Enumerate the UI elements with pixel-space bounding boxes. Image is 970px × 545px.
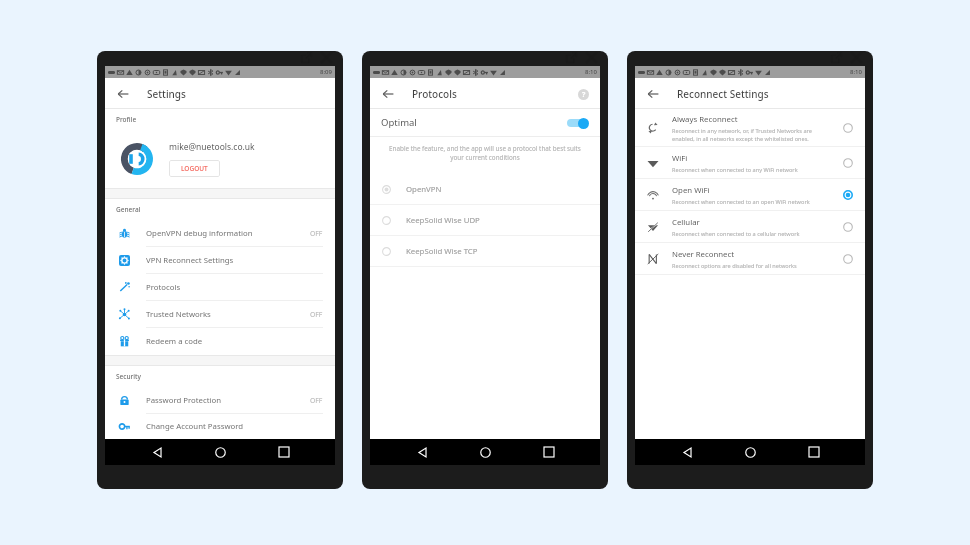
button[interactable]: Home [473,440,497,464]
button[interactable]: Open WiFi [635,179,865,211]
button[interactable]: Back [642,83,663,104]
staticText: OFF [310,396,323,405]
button[interactable]: Never Reconnect [635,243,865,275]
staticText: Reconnect when connected to a cellular n… [672,230,800,238]
button[interactable]: Redeem a code [105,328,335,355]
staticText: Settings [147,87,186,101]
button[interactable]: Back [675,440,699,464]
button[interactable]: Protocols [105,274,335,301]
button[interactable]: Pop out window [827,48,845,66]
staticText: Reconnect when connected to any WiFi net… [672,166,798,174]
button[interactable]: Close [317,48,335,66]
staticText: LOGOUT [181,164,208,173]
button[interactable]: WiFi [635,147,865,179]
button[interactable]: OpenVPN debug information [105,220,335,247]
button[interactable]: KeepSolid Wise TCP [370,236,600,267]
staticText: Always Reconnect [672,114,738,125]
staticText: Enable the feature, and the app will use… [384,144,586,162]
staticText: Security [116,372,141,381]
button[interactable]: Back [377,83,398,104]
button[interactable]: Back [112,83,133,104]
button[interactable]: VPN Reconnect Settings [105,247,335,274]
staticText: OFF [310,229,323,238]
staticText: 8:10 [850,68,862,76]
button[interactable]: Cellular [635,211,865,243]
button[interactable]: Home [208,440,232,464]
staticText: 8:09 [320,68,332,76]
button[interactable]: KeepSolid Wise UDP [370,205,600,236]
button[interactable]: Always Reconnect [635,109,865,147]
staticText: OFF [310,310,323,319]
button[interactable]: Change Account Password [105,414,335,439]
button[interactable]: mike@nuetools.co.uk [105,130,335,188]
button[interactable]: Back [410,440,434,464]
button[interactable]: Close [582,48,600,66]
staticText: Reconnect Settings [677,87,769,101]
staticText: Password Protection [146,395,310,406]
button[interactable]: Recent apps [802,440,826,464]
button[interactable]: Password Protection [105,387,335,414]
staticText: Never Reconnect [672,249,735,260]
staticText: Trusted Networks [146,309,310,320]
button[interactable]: Recent apps [537,440,561,464]
button[interactable]: Recent apps [272,440,296,464]
button[interactable]: Home [738,440,762,464]
button[interactable]: Trusted Networks [105,301,335,328]
button[interactable]: Close [847,48,865,66]
staticText: Protocols [146,282,323,293]
button[interactable]: LOGOUT [169,160,220,177]
staticText: Profile [116,115,137,124]
staticText: ? [582,90,586,100]
staticText: Redeem a code [146,336,323,347]
button[interactable]: Back [145,440,169,464]
staticText: KeepSolid Wise UDP [406,215,480,226]
button[interactable]: Optimal [370,109,600,136]
staticText: Reconnect options are disabled for all n… [672,262,797,270]
staticText: KeepSolid Wise TCP [406,246,478,257]
staticText: 8:10 [585,68,597,76]
staticText: Protocols [412,87,457,101]
staticText: VPN Reconnect Settings [146,255,323,266]
button[interactable]: Pop out window [562,48,580,66]
staticText: Change Account Password [146,421,323,432]
staticText: mike@nuetools.co.uk [169,141,255,153]
button[interactable]: Pop out window [297,48,315,66]
staticText: OpenVPN debug information [146,228,310,239]
staticText: Reconnect in any network, or, if Trusted… [672,127,835,143]
staticText: Optimal [381,116,565,129]
staticText: General [116,205,141,214]
button[interactable]: OpenVPN [370,174,600,205]
staticText: Reconnect when connected to an open WiFi… [672,198,810,206]
staticText: Cellular [672,217,700,228]
staticText: WiFi [672,153,688,164]
staticText: OpenVPN [406,184,442,195]
button[interactable]: Help [574,85,592,103]
staticText: Open WiFi [672,185,710,196]
